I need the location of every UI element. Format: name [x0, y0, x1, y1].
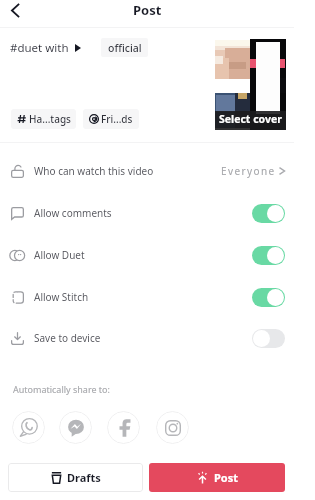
- button[interactable]: Disabled: [252, 329, 285, 348]
- button[interactable]: Share to Facebook: [107, 411, 140, 444]
- staticText: Ha...tags: [29, 112, 71, 126]
- staticText: Everyone: [221, 164, 276, 178]
- staticText: #duet with: [10, 40, 69, 56]
- staticText: Save to device: [34, 331, 101, 345]
- button[interactable]: Fri...ds: [83, 109, 139, 129]
- button[interactable]: Share to Instagram: [156, 411, 189, 444]
- staticText: Post: [133, 1, 162, 19]
- button[interactable]: Allow comments: [0, 192, 294, 234]
- button[interactable]: Back: [3, 0, 27, 20]
- staticText: Select cover: [219, 112, 282, 126]
- button[interactable]: Enabled: [252, 204, 285, 223]
- staticText: Automatically share to:: [13, 383, 110, 395]
- button[interactable]: official: [101, 38, 148, 57]
- staticText: Allow Stitch: [34, 290, 89, 304]
- button[interactable]: Enabled: [252, 288, 285, 307]
- staticText: Fri...ds: [101, 112, 133, 126]
- staticText: Allow comments: [34, 206, 112, 220]
- button[interactable]: Post: [149, 463, 285, 492]
- button[interactable]: Ha...tags: [11, 109, 76, 129]
- staticText: Post: [214, 470, 239, 485]
- button[interactable]: Who can watch this video: [0, 150, 294, 192]
- staticText: Who can watch this video: [34, 164, 154, 178]
- button[interactable]: Allow Duet: [0, 234, 294, 276]
- button[interactable]: Share to WhatsApp: [12, 411, 45, 444]
- staticText: Drafts: [67, 470, 101, 485]
- button[interactable]: Save to device: [0, 317, 294, 359]
- button[interactable]: Enabled: [252, 246, 285, 265]
- button[interactable]: Drafts: [8, 463, 143, 492]
- staticText: official: [108, 41, 142, 55]
- button[interactable]: Select cover: [215, 38, 286, 130]
- staticText: Allow Duet: [34, 248, 85, 262]
- button[interactable]: Share to Messenger: [59, 411, 92, 444]
- button[interactable]: Allow Stitch: [0, 276, 294, 318]
